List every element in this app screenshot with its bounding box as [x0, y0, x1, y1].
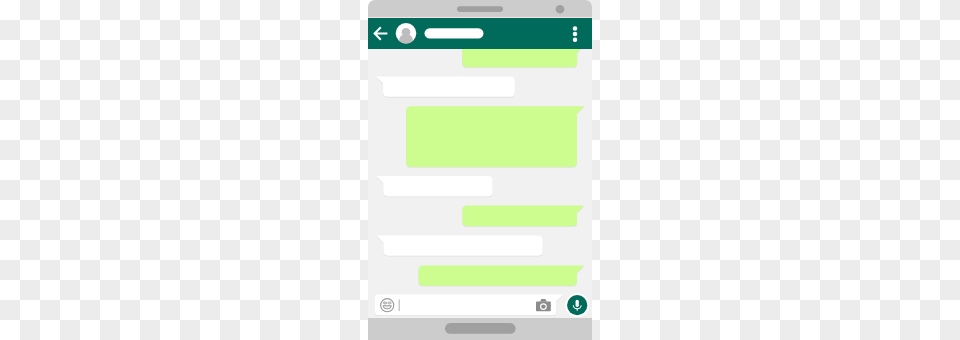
- button[interactable]: Record a voice message: [565, 293, 590, 318]
- button[interactable]: Sent message: [462, 49, 585, 68]
- button[interactable]: Contact name: [421, 25, 487, 42]
- button[interactable]: Type a message: [399, 295, 531, 315]
- button[interactable]: Sent message: [462, 205, 585, 226]
- button[interactable]: Received message: [376, 235, 543, 256]
- button[interactable]: Sent message: [406, 106, 585, 167]
- button[interactable]: Navigate back: [371, 23, 392, 44]
- button[interactable]: Received message: [376, 76, 515, 97]
- button[interactable]: Attach a photo: [534, 296, 554, 316]
- button[interactable]: Contact profile photo: [394, 22, 418, 45]
- button[interactable]: Received message: [376, 176, 493, 197]
- button[interactable]: Home: [445, 322, 516, 334]
- button[interactable]: Sent message: [418, 265, 585, 286]
- button[interactable]: Insert emoji: [377, 296, 397, 315]
- button[interactable]: More options: [565, 22, 586, 46]
